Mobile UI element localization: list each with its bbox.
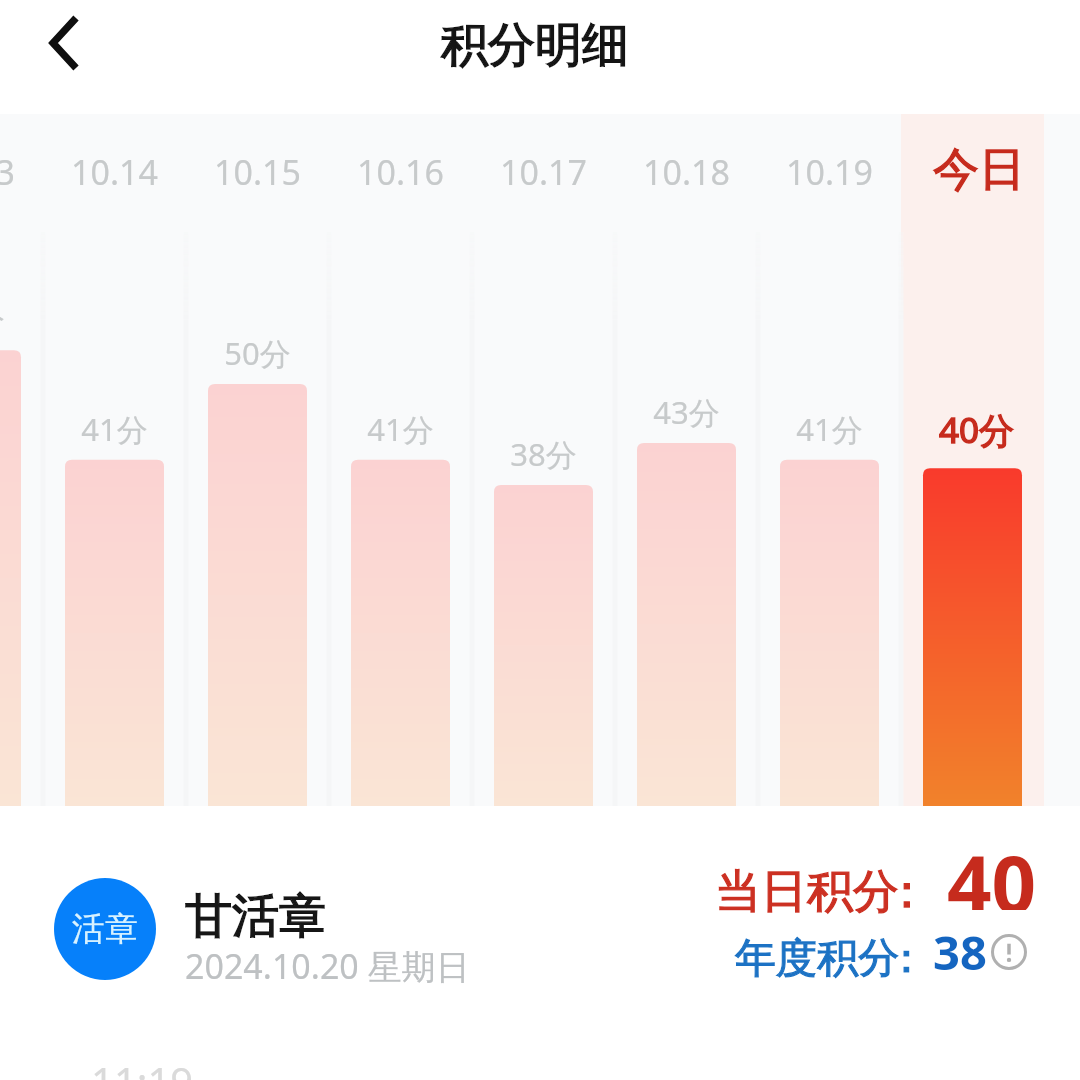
staticText: 41分 — [81, 408, 148, 450]
staticText: 40分 — [939, 406, 1015, 454]
button[interactable]: 10.14 — [43, 0, 186, 806]
staticText: 甘活章 — [185, 887, 326, 946]
staticText: 积分明细 — [441, 16, 629, 75]
staticText: ： — [884, 863, 930, 921]
button[interactable]: 今日 — [901, 0, 1044, 806]
button[interactable]: Back — [23, 0, 103, 86]
staticText: 11:19 — [91, 1054, 194, 1080]
button[interactable]: 10.16 — [329, 0, 472, 806]
staticText: 38分 — [510, 433, 577, 475]
staticText: 10.16 — [357, 149, 444, 195]
button[interactable]: 活章 — [40, 866, 500, 992]
button[interactable]: Info — [991, 934, 1027, 970]
button[interactable]: 10.19 — [758, 0, 901, 806]
staticText: 10.17 — [500, 149, 587, 195]
staticText: 10.19 — [786, 149, 873, 195]
staticText: ： — [884, 863, 930, 921]
staticText: 10.13 — [0, 149, 15, 195]
staticText: 2024.10.20 星期日 — [185, 943, 470, 989]
button[interactable]: 10.18 — [615, 0, 758, 806]
staticText: 活章 — [72, 908, 138, 950]
staticText: 当日积分 — [715, 863, 899, 921]
staticText: ： — [886, 933, 927, 985]
staticText: 41分 — [367, 408, 434, 450]
staticText: 甘活章 — [185, 887, 326, 946]
staticText: 43分 — [653, 391, 720, 433]
staticText: 40 — [947, 830, 1037, 910]
staticText: 41分 — [796, 408, 863, 450]
staticText: 10.15 — [214, 149, 301, 195]
staticText: 今日 — [933, 141, 1025, 199]
staticText: 年度积分 — [735, 933, 899, 985]
staticText: 38 — [933, 920, 987, 982]
staticText: 50分 — [224, 332, 291, 374]
staticText: 10.18 — [643, 149, 730, 195]
staticText: 54分 — [0, 298, 5, 340]
button[interactable]: 10.13 — [0, 0, 43, 806]
staticText: 40分 — [939, 406, 1015, 454]
staticText: 年度积分 — [735, 933, 899, 985]
staticText: ： — [886, 933, 927, 985]
button[interactable]: 10.17 — [472, 0, 615, 806]
button[interactable]: 年度积分 — [710, 925, 1045, 987]
button[interactable]: 10.15 — [186, 0, 329, 806]
staticText: 今日 — [933, 141, 1025, 199]
staticText: 10.14 — [71, 149, 158, 195]
staticText: 积分明细 — [441, 16, 629, 75]
staticText: 当日积分 — [715, 863, 899, 921]
button[interactable]: 当日积分 — [700, 845, 1045, 925]
